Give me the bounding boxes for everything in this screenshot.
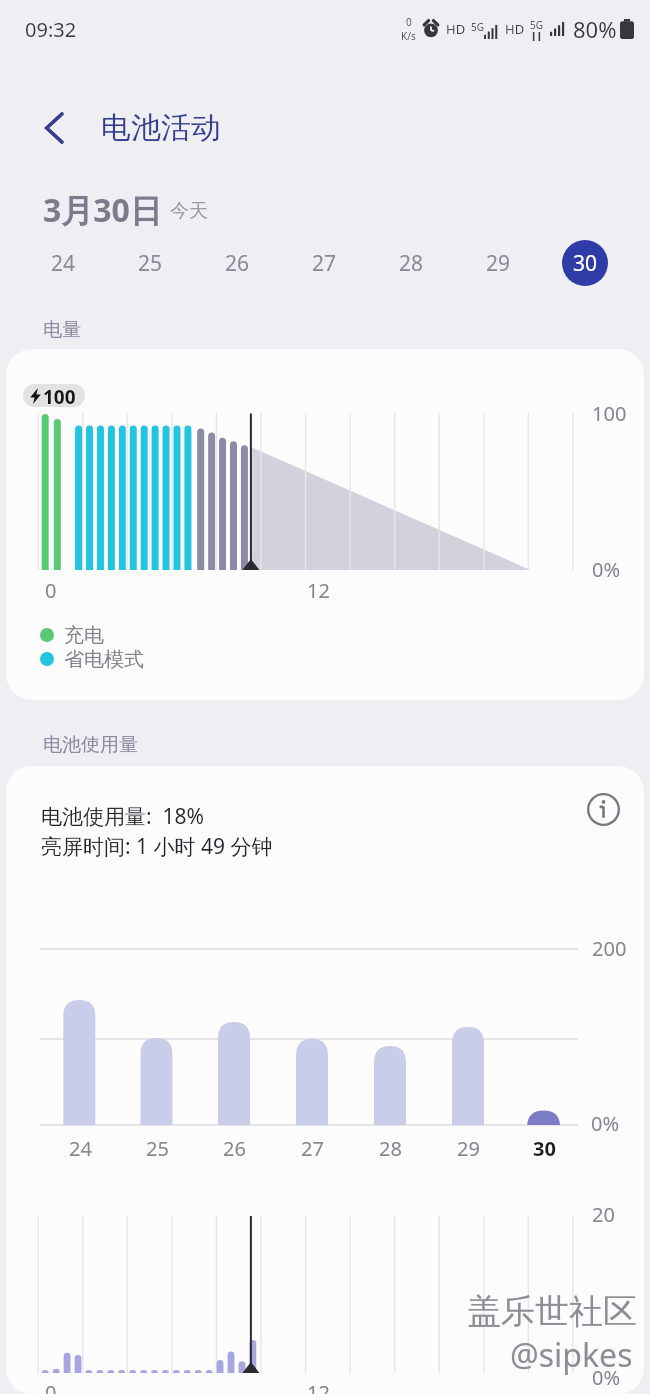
staticText: 25: [146, 1135, 169, 1162]
staticText: 0%: [592, 556, 621, 583]
staticText: 5G: [471, 20, 484, 34]
staticText: 亮屏时间: 1 小时 49 分钟: [41, 832, 273, 861]
staticText: 26: [223, 1135, 246, 1162]
staticText: 电池活动: [101, 109, 221, 147]
staticText: 27: [312, 249, 337, 278]
button[interactable]: Back: [29, 102, 81, 154]
staticText: K/s: [401, 29, 416, 43]
button[interactable]: Info: [579, 785, 627, 833]
staticText: 27: [301, 1135, 324, 1162]
staticText: 29: [457, 1135, 480, 1162]
staticText: 200: [592, 935, 627, 962]
staticText: 充电: [64, 623, 104, 647]
staticText: 12: [307, 577, 330, 604]
button[interactable]: 29: [475, 240, 521, 286]
staticText: 盖乐世社区: [467, 1290, 637, 1333]
staticText: HD: [505, 20, 525, 38]
button[interactable]: 27: [301, 240, 347, 286]
staticText: 0%: [591, 1110, 620, 1137]
staticText: 电池使用量: [43, 733, 138, 757]
staticText: 100: [592, 400, 627, 427]
staticText: 28: [379, 1135, 402, 1162]
staticText: 100: [43, 384, 76, 407]
button[interactable]: 30: [562, 240, 608, 286]
staticText: 省电模式: [64, 647, 144, 671]
button[interactable]: 26: [214, 240, 260, 286]
staticText: 电量: [43, 318, 81, 342]
staticText: 0: [45, 1379, 57, 1394]
staticText: 20: [592, 1201, 615, 1228]
staticText: 24: [69, 1135, 92, 1162]
staticText: 0: [45, 577, 57, 604]
staticText: 3月30日: [43, 188, 162, 232]
staticText: 29: [486, 249, 511, 278]
staticText: 24: [51, 249, 76, 278]
staticText: HD: [446, 20, 466, 38]
staticText: 电池使用量: 18%: [41, 802, 205, 831]
button[interactable]: 25: [127, 240, 173, 286]
button[interactable]: 24: [40, 240, 86, 286]
staticText: 0%: [592, 1364, 621, 1391]
staticText: @sipkes: [510, 1333, 633, 1377]
staticText: 80%: [573, 14, 617, 44]
staticText: 12: [307, 1379, 330, 1394]
staticText: 5G: [530, 18, 543, 32]
staticText: 26: [225, 249, 250, 278]
staticText: 今天: [170, 199, 208, 223]
button[interactable]: 28: [388, 240, 434, 286]
staticText: 28: [399, 249, 424, 278]
staticText: 30: [573, 249, 598, 278]
staticText: 30: [533, 1135, 556, 1162]
staticText: 25: [138, 249, 163, 278]
staticText: 09:32: [25, 16, 77, 43]
staticText: 0: [406, 15, 412, 29]
